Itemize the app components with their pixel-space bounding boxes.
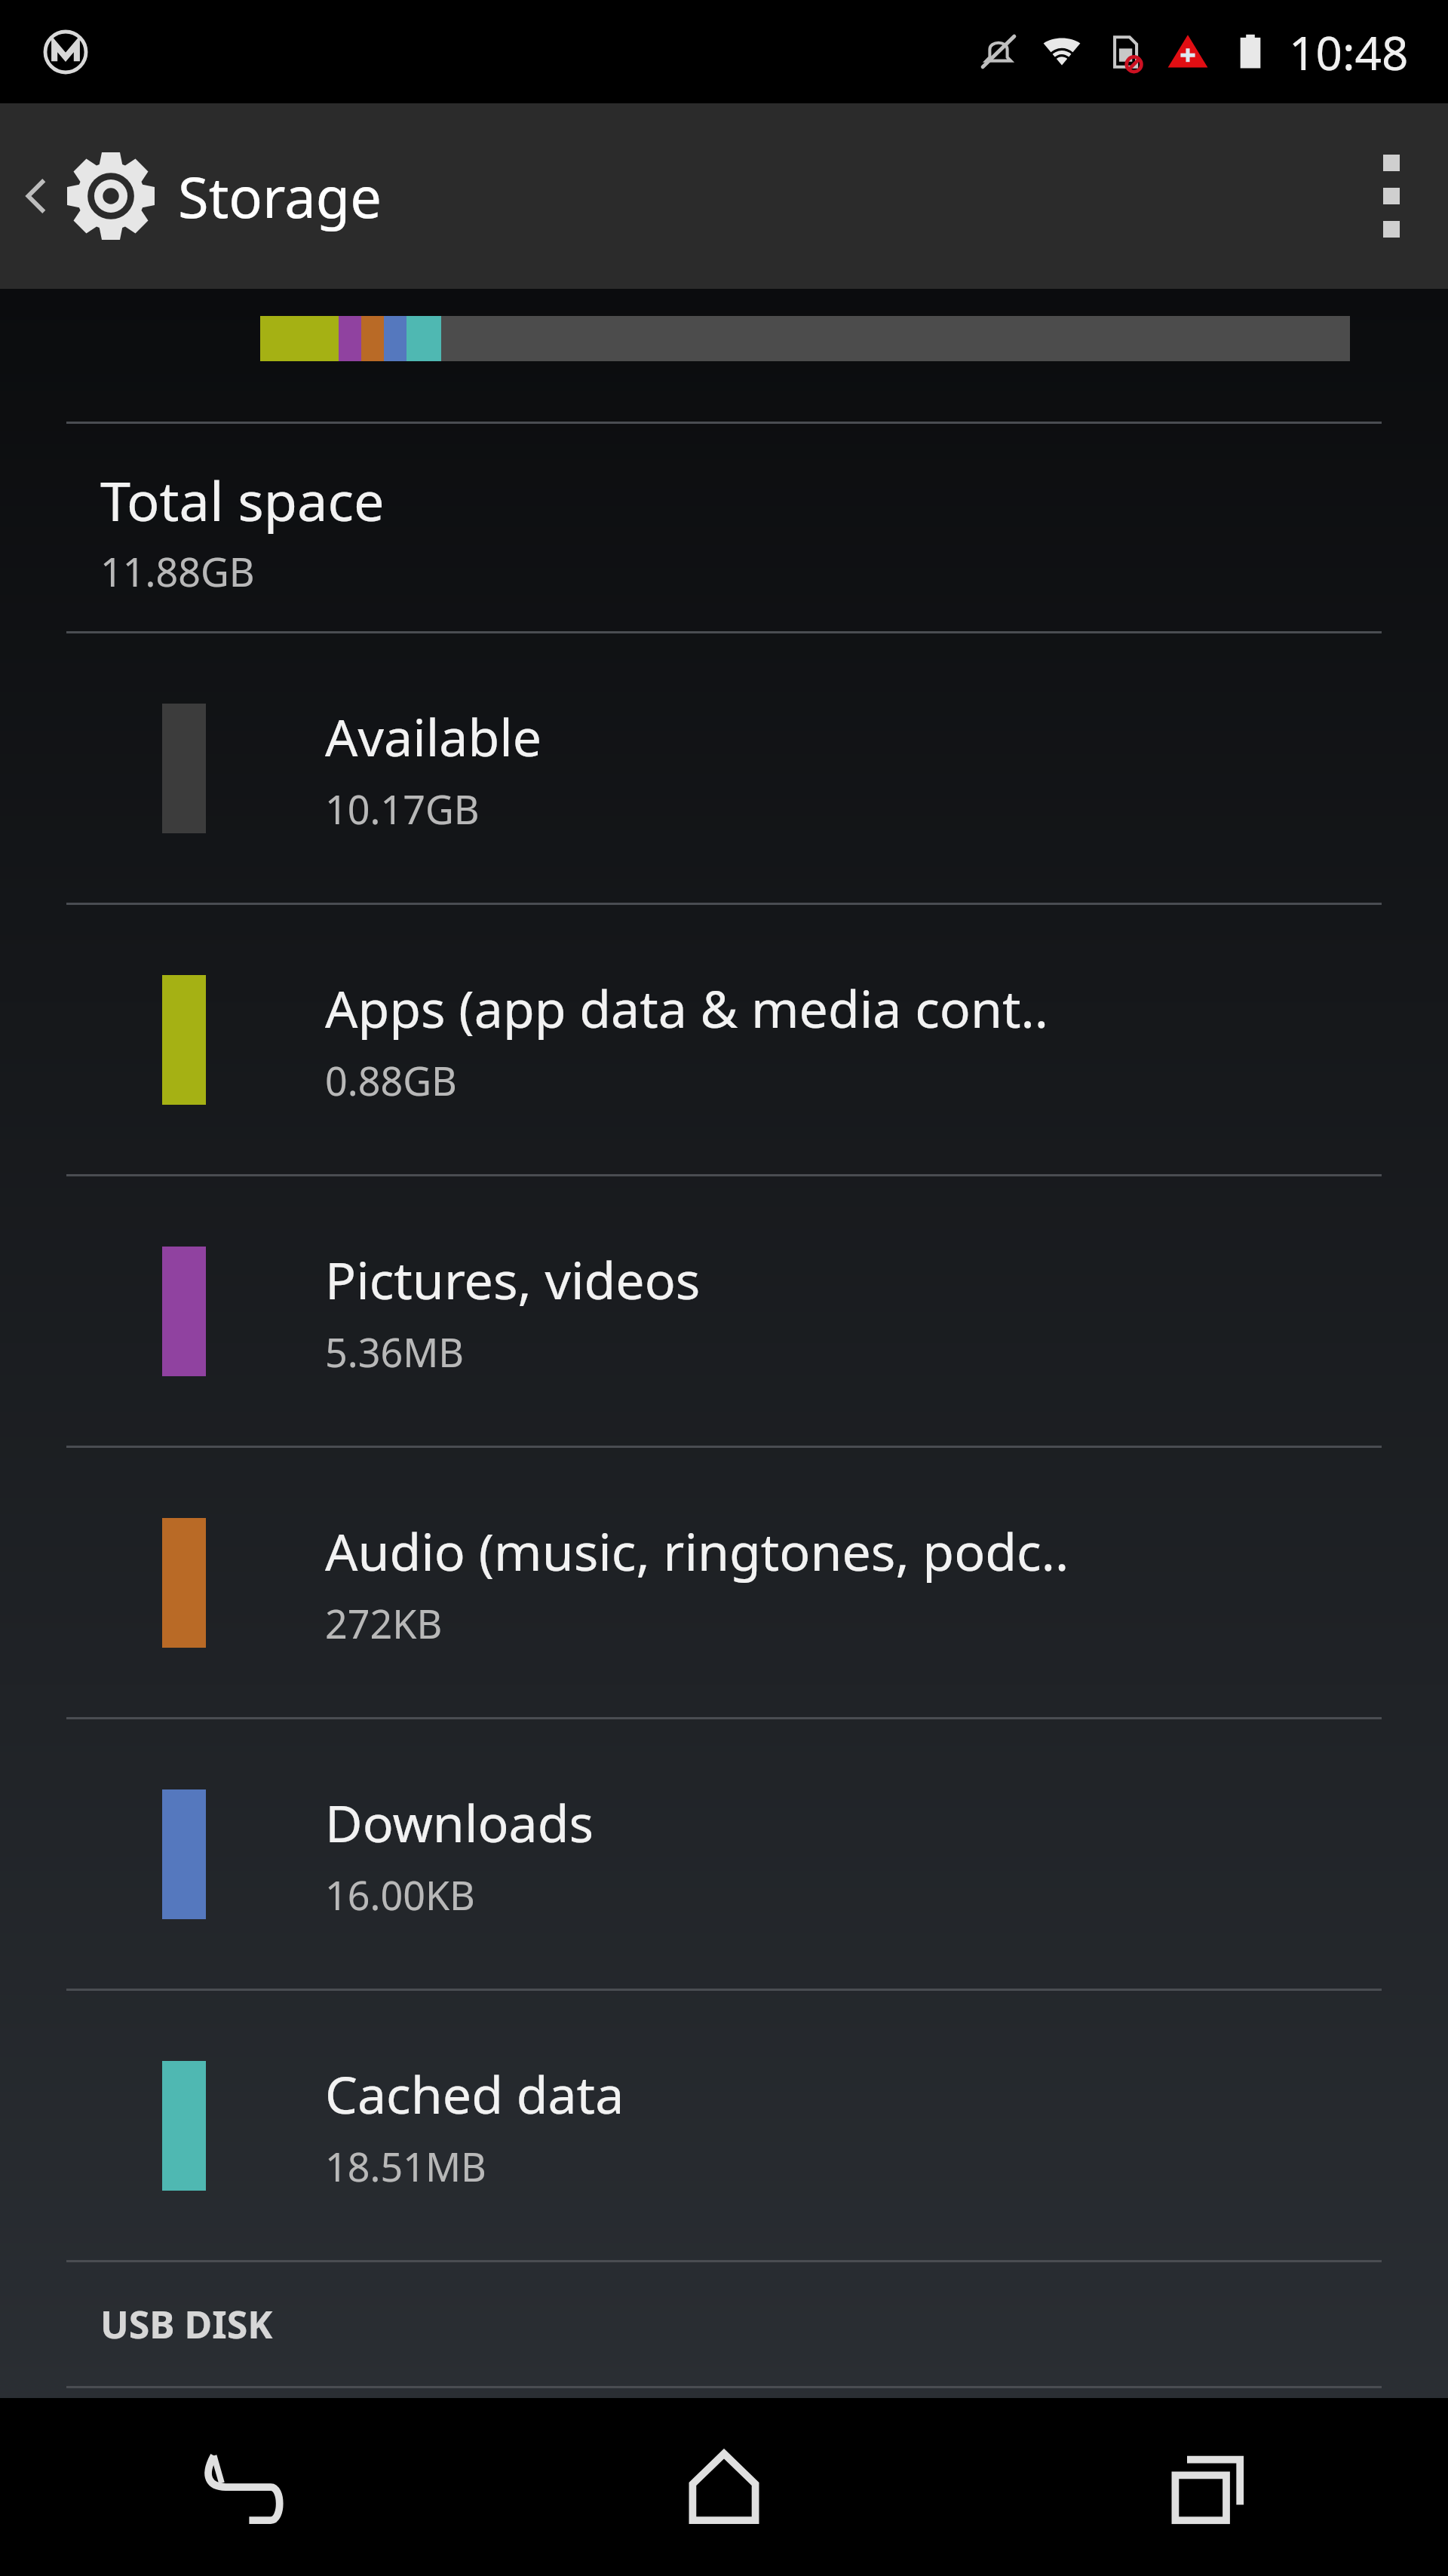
button[interactable]: Pictures, videos xyxy=(0,1176,1448,1446)
staticText: 272KB xyxy=(325,1596,443,1650)
staticText: 5.36MB xyxy=(325,1325,465,1378)
staticText: 0.88GB xyxy=(325,1053,457,1107)
button[interactable]: Up xyxy=(0,103,404,289)
staticText: Storage xyxy=(178,158,382,235)
staticText: USB DISK xyxy=(100,2298,273,2350)
staticText: 16.00KB xyxy=(325,1868,475,1921)
button[interactable]: Available xyxy=(0,633,1448,903)
button[interactable]: Apps (app data & media cont.. xyxy=(0,905,1448,1174)
button[interactable]: Recent apps xyxy=(965,2398,1448,2576)
button[interactable]: Total space xyxy=(0,424,1448,631)
other: Up xyxy=(15,174,59,218)
staticText: 10:48 xyxy=(1289,20,1409,84)
button[interactable]: Back xyxy=(0,2398,483,2576)
staticText: Cached data xyxy=(325,2059,624,2129)
staticText: Total space xyxy=(100,463,385,537)
button[interactable]: Home xyxy=(483,2398,965,2576)
button[interactable]: Cached data xyxy=(0,1991,1448,2260)
staticText: Pictures, videos xyxy=(325,1244,701,1314)
staticText: 11.88GB xyxy=(100,544,255,598)
staticText: 10.17GB xyxy=(325,782,480,836)
button[interactable]: More options xyxy=(1335,103,1448,289)
button[interactable]: Downloads xyxy=(0,1719,1448,1989)
staticText: Available xyxy=(325,701,542,771)
staticText: Downloads xyxy=(325,1787,594,1857)
staticText: Audio (music, ringtones, podc.. xyxy=(325,1516,1069,1586)
staticText: 18.51MB xyxy=(325,2139,486,2193)
staticText: Apps (app data & media cont.. xyxy=(325,973,1048,1043)
button[interactable]: Audio (music, ringtones, podc.. xyxy=(0,1448,1448,1717)
